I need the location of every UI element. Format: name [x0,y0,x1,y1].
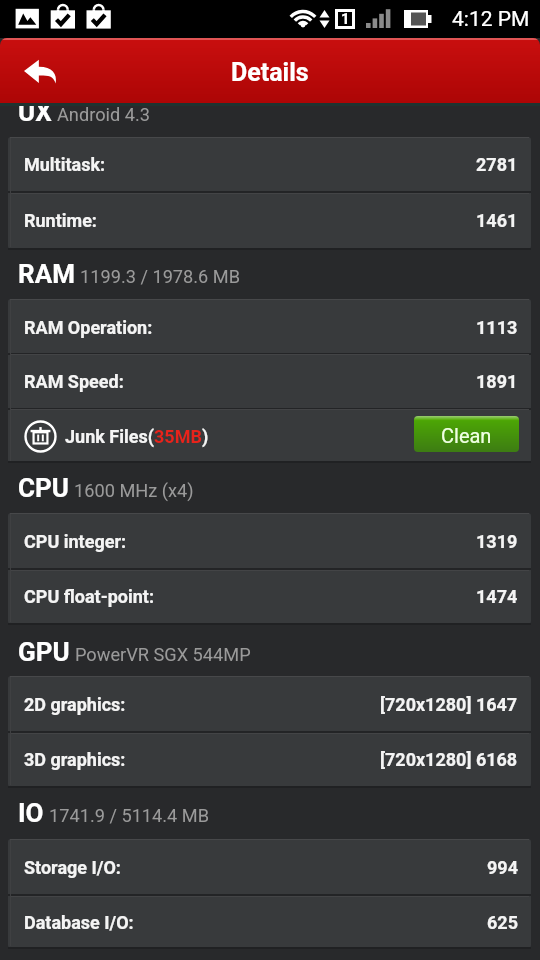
staticText: 1461 [476,210,518,231]
staticText: 1891 [476,371,518,392]
staticText: [720x1280] 6168 [380,749,518,770]
staticText: Clean [441,424,492,447]
staticText: Android 4.3 [57,104,150,125]
staticText: Database I/O: [24,912,134,933]
staticText: RAM Speed: [24,371,124,392]
staticText: Storage I/O: [24,857,121,878]
staticText: GPU [18,637,70,667]
staticText: 2781 [476,154,518,175]
staticText: Junk Files(35MB) [65,426,209,447]
staticText: 1113 [476,317,518,338]
button[interactable]: 2D graphics: [8,676,531,733]
staticText: PowerVR SGX 544MP [75,644,251,665]
staticText: 1199.3 / 1978.6 MB [80,266,241,287]
button[interactable]: Database I/O: [8,896,531,949]
staticText: IO [18,798,44,828]
button[interactable]: RAM Operation: [8,299,531,355]
button[interactable]: Clean [414,416,519,452]
button[interactable]: CPU integer: [8,513,531,570]
staticText: 1319 [476,531,518,552]
staticText: RAM Operation: [24,317,153,338]
staticText: 2D graphics: [24,694,126,715]
button[interactable]: Junk Files(35MB) [8,409,531,463]
staticText: UX [18,97,52,127]
staticText: RAM [18,259,75,289]
staticText: [720x1280] 1647 [380,694,518,715]
button[interactable]: Back [0,38,74,104]
staticText: Multitask: [24,154,106,175]
staticText: 1741.9 / 5114.4 MB [49,805,210,826]
staticText: 4:12 PM [452,7,530,32]
staticText: 3D graphics: [24,749,126,770]
staticText: 625 [487,912,518,933]
staticText: 994 [487,857,518,878]
button[interactable]: RAM Speed: [8,354,531,409]
button[interactable]: Runtime: [8,192,531,249]
button[interactable]: 3D graphics: [8,732,531,787]
staticText: 1 [341,10,350,28]
button[interactable]: Storage I/O: [8,839,531,896]
staticText: 1600 MHz (x4) [74,480,194,501]
button[interactable]: Multitask: [8,137,531,192]
staticText: Runtime: [24,210,97,231]
staticText: 1474 [476,586,518,607]
staticText: CPU integer: [24,531,127,552]
staticText: CPU float-point: [24,586,155,607]
staticText: Details [231,58,309,87]
staticText: CPU [18,473,69,503]
button[interactable]: CPU float-point: [8,569,531,624]
